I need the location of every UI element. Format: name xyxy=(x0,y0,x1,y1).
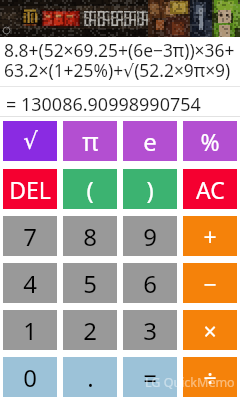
staticText: = 130086.90998990754 xyxy=(6,92,201,112)
staticText: 2 xyxy=(83,314,97,347)
staticText: % xyxy=(200,126,220,157)
staticText: √ xyxy=(23,128,38,155)
staticText: ( xyxy=(86,173,94,206)
staticText: 1 xyxy=(23,314,37,347)
staticText: 4 xyxy=(23,267,37,300)
staticText: + xyxy=(203,221,217,252)
button[interactable]: + xyxy=(183,216,237,256)
staticText: ) xyxy=(146,173,154,206)
button[interactable]: 4 xyxy=(3,263,57,303)
button[interactable]: . xyxy=(63,357,117,397)
button[interactable]: 8 xyxy=(63,216,117,256)
button[interactable]: 6 xyxy=(123,263,177,303)
button[interactable]: DEL xyxy=(3,169,57,209)
button[interactable]: AC xyxy=(183,169,237,209)
button[interactable]: e xyxy=(123,121,177,161)
staticText: 6 xyxy=(143,267,157,300)
staticText: 9 xyxy=(143,220,157,253)
button[interactable]: 1 xyxy=(3,310,57,350)
staticText: 8 xyxy=(83,220,97,253)
staticText: 0 xyxy=(23,361,37,394)
staticText: e xyxy=(143,125,157,158)
staticText: AC xyxy=(196,174,225,205)
button[interactable]: √ xyxy=(3,121,57,161)
staticText: 3 xyxy=(143,314,157,347)
button[interactable]: − xyxy=(183,263,237,303)
button[interactable]: 0 xyxy=(3,357,57,397)
staticText: × xyxy=(203,315,217,346)
button[interactable]: Advertisement banner xyxy=(0,0,240,37)
button[interactable]: π xyxy=(63,121,117,161)
staticText: π xyxy=(82,124,99,158)
staticText: 8.8+(52×69.25+(6e−3π))×36+ 63.2×(1+25%)+… xyxy=(4,38,235,82)
button[interactable]: % xyxy=(183,121,237,161)
button[interactable]: × xyxy=(183,310,237,350)
staticText: 7 xyxy=(23,220,37,253)
button[interactable]: = xyxy=(123,357,177,397)
staticText: ÷ xyxy=(203,362,217,393)
staticText: − xyxy=(203,268,217,299)
button[interactable]: 2 xyxy=(63,310,117,350)
staticText: 5 xyxy=(83,267,97,300)
button[interactable]: ( xyxy=(63,169,117,209)
button[interactable]: 7 xyxy=(3,216,57,256)
staticText: . xyxy=(87,361,94,394)
button[interactable]: 3 xyxy=(123,310,177,350)
button[interactable]: ) xyxy=(123,169,177,209)
button[interactable]: ÷ xyxy=(183,357,237,397)
button[interactable]: 5 xyxy=(63,263,117,303)
staticText: = xyxy=(143,361,157,394)
staticText: DEL xyxy=(9,174,51,205)
button[interactable]: 9 xyxy=(123,216,177,256)
staticText: LG QuickMemo xyxy=(145,374,235,390)
